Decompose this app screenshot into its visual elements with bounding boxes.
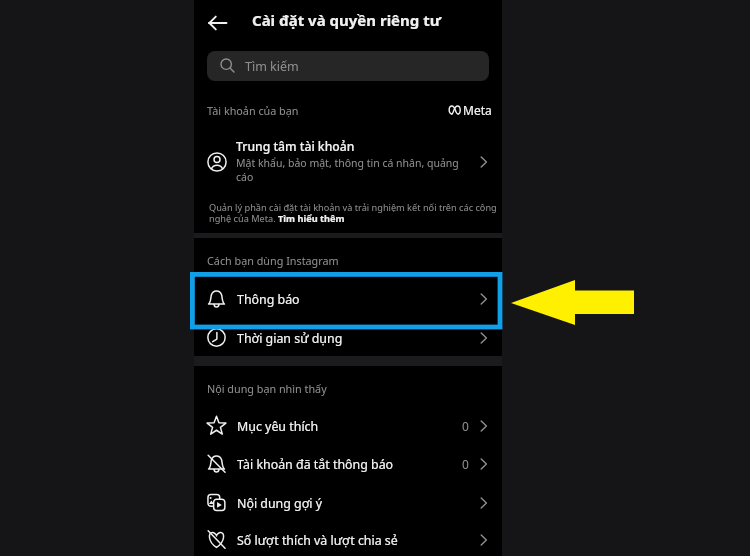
button[interactable]: Tài khoản đã tắt thông báo xyxy=(194,445,502,483)
staticText: Số lượt thích và lượt chia sẻ xyxy=(237,532,398,549)
staticText: Mật khẩu, bảo mật, thông tin cá nhân, qu… xyxy=(236,156,478,184)
staticText: Tìm kiếm xyxy=(245,58,299,75)
button[interactable]: Nội dung gợi ý xyxy=(194,484,502,522)
button[interactable]: Thông báo xyxy=(194,280,502,318)
staticText: Trung tâm tài khoản xyxy=(236,138,355,155)
button[interactable]: Trung tâm tài khoản xyxy=(194,132,502,190)
staticText: Cách bạn dùng Instagram xyxy=(207,253,339,268)
staticText: Mục yêu thích xyxy=(237,418,319,435)
button[interactable]: Mục yêu thích xyxy=(194,407,502,445)
staticText: Meta xyxy=(463,102,492,118)
staticText: Nội dung bạn nhìn thấy xyxy=(207,381,327,396)
staticText: 0 xyxy=(462,418,469,434)
staticText: Cài đặt và quyền riêng tư xyxy=(252,10,442,30)
staticText: Thời gian sử dụng xyxy=(237,330,343,347)
button[interactable]: Số lượt thích và lượt chia sẻ xyxy=(194,521,502,556)
button[interactable]: Tìm kiếm xyxy=(207,51,489,81)
staticText: Tài khoản đã tắt thông báo xyxy=(237,456,394,473)
staticText: Thông báo xyxy=(237,291,300,308)
staticText: Quản lý phần cài đặt tài khoản và trải n… xyxy=(209,201,501,225)
staticText: 0 xyxy=(462,456,469,472)
button[interactable]: Thời gian sử dụng xyxy=(194,319,502,357)
staticText: Nội dung gợi ý xyxy=(237,495,323,512)
staticText: Tài khoản của bạn xyxy=(207,103,299,118)
button[interactable]: Back xyxy=(201,7,233,39)
